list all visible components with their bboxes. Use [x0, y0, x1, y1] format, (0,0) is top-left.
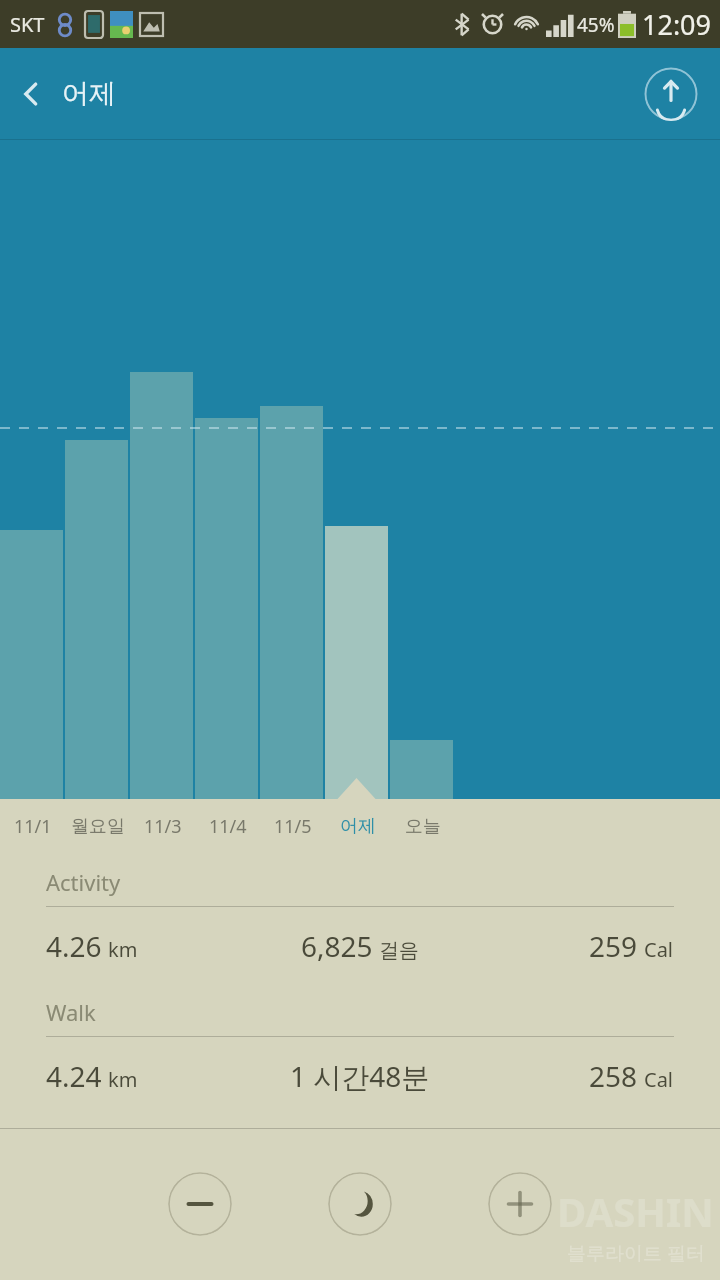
staticText: 어제: [62, 77, 116, 111]
staticText: 어제: [340, 815, 376, 838]
button[interactable]: 11/1: [0, 799, 65, 853]
staticText: 45%: [577, 12, 615, 38]
staticText: DASHIN: [557, 1184, 714, 1238]
staticText: Walk: [46, 997, 96, 1027]
button[interactable]: Increase brightness: [488, 1172, 552, 1236]
button[interactable]: Walk: [0, 983, 720, 1113]
staticText: km: [108, 1066, 138, 1093]
staticText: 258: [589, 1057, 638, 1095]
staticText: 월요일: [71, 815, 125, 838]
staticText: 11/1: [14, 814, 52, 839]
staticText: Run: [46, 1127, 87, 1157]
staticText: 오늘: [405, 815, 441, 838]
staticText: 11/4: [209, 814, 247, 839]
button[interactable]: 11/4: [195, 799, 260, 853]
staticText: Cal: [644, 1066, 674, 1093]
button[interactable]: Share: [644, 67, 698, 121]
button[interactable]: 11/5: [260, 799, 325, 853]
staticText: Activity: [46, 867, 121, 897]
staticText: 12:09: [642, 6, 712, 43]
staticText: 4.24: [46, 1057, 102, 1095]
staticText: Cal: [644, 936, 674, 963]
staticText: 4.26: [46, 927, 102, 965]
staticText: 11/5: [274, 814, 312, 839]
staticText: 블루라이트 필터: [567, 1240, 705, 1266]
button[interactable]: 11/3: [130, 799, 195, 853]
staticText: 6,825: [301, 927, 373, 965]
button[interactable]: Back: [0, 48, 62, 140]
staticText: 걸음: [379, 938, 419, 963]
staticText: SKT: [10, 11, 45, 38]
button[interactable]: 어제: [325, 799, 390, 853]
staticText: 1 시간48분: [290, 1057, 430, 1095]
staticText: 259: [589, 927, 638, 965]
button[interactable]: 오늘: [390, 799, 455, 853]
button[interactable]: Decrease brightness: [168, 1172, 232, 1236]
staticText: 11/3: [144, 814, 182, 839]
button[interactable]: Night mode: [328, 1172, 392, 1236]
button[interactable]: 월요일: [65, 799, 130, 853]
staticText: km: [108, 936, 138, 963]
button[interactable]: Activity: [0, 853, 720, 983]
